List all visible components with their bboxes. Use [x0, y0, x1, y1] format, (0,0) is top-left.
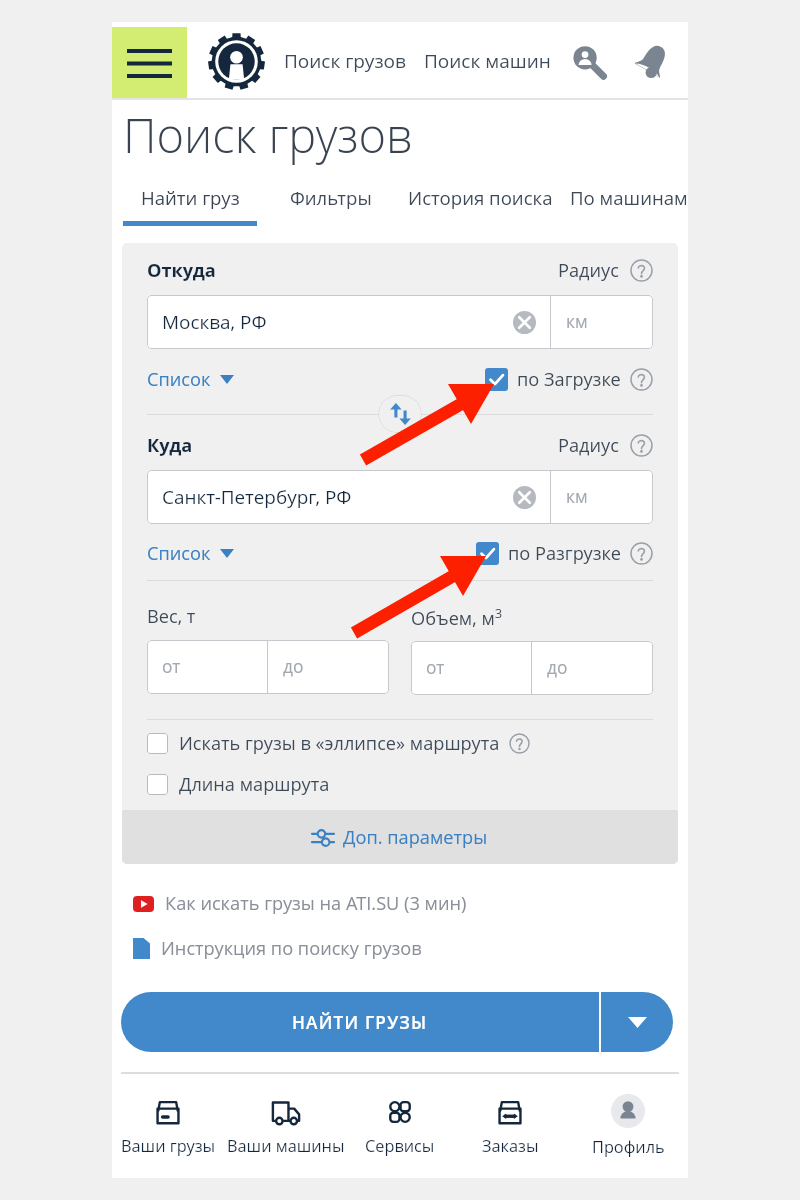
button[interactable]: Санкт-Петербург, РФ: [147, 470, 550, 524]
staticText: до: [283, 655, 304, 679]
button[interactable]: Find user: [566, 38, 612, 84]
button[interactable]: Clear: [513, 311, 536, 334]
staticText: Инструкция по поиску грузов: [161, 936, 422, 961]
button[interactable]: км: [551, 295, 653, 349]
button[interactable]: Заказы: [452, 1089, 568, 1163]
staticText: Список: [147, 367, 211, 392]
staticText: Вес, т: [147, 604, 196, 629]
button[interactable]: Help: [630, 542, 653, 565]
button[interactable]: НАЙТИ ГРУЗЫ: [121, 992, 599, 1052]
staticText: от: [426, 656, 445, 680]
staticText: Поиск грузов: [284, 48, 406, 74]
button[interactable]: от: [411, 641, 531, 695]
button[interactable]: Radius help: [630, 259, 653, 282]
button[interactable]: по Загрузке: [485, 364, 621, 395]
staticText: от: [162, 655, 181, 679]
staticText: Список: [147, 541, 211, 566]
staticText: Искать грузы в «эллипсе» маршрута: [179, 731, 500, 756]
button[interactable]: Профиль: [568, 1088, 688, 1164]
button[interactable]: Как искать грузы на ATI.SU (3 мин): [133, 888, 467, 919]
staticText: км: [566, 485, 588, 509]
button[interactable]: Menu: [112, 27, 187, 100]
staticText: История поиска: [408, 185, 553, 210]
staticText: до: [547, 656, 568, 680]
staticText: по Разгрузке: [508, 541, 621, 566]
staticText: Как искать грузы на ATI.SU (3 мин): [165, 891, 467, 916]
button[interactable]: Notifications: [630, 38, 676, 84]
staticText: Сервисы: [365, 1135, 435, 1157]
button[interactable]: Поиск машин: [424, 38, 551, 84]
staticText: Радиус: [558, 433, 619, 458]
staticText: Профиль: [592, 1136, 665, 1158]
button[interactable]: История поиска: [402, 180, 558, 226]
button[interactable]: по Разгрузке: [476, 538, 621, 569]
staticText: Длина маршрута: [179, 772, 330, 797]
button[interactable]: Help: [630, 368, 653, 391]
button[interactable]: Длина маршрута: [147, 770, 330, 799]
button[interactable]: Искать грузы в «эллипсе» маршрута: [147, 729, 530, 758]
button[interactable]: По машинам: [570, 180, 688, 226]
button[interactable]: Сервисы: [348, 1089, 452, 1163]
button[interactable]: Ваши грузы: [112, 1089, 224, 1163]
staticText: По машинам: [570, 185, 688, 210]
staticText: Заказы: [482, 1135, 539, 1157]
button[interactable]: Clear: [513, 486, 536, 509]
staticText: Фильтры: [290, 185, 372, 210]
staticText: Санкт-Петербург, РФ: [162, 484, 352, 510]
staticText: Поиск машин: [424, 48, 551, 74]
button[interactable]: до: [532, 641, 653, 695]
button[interactable]: Список: [147, 538, 234, 569]
staticText: Ваши грузы: [121, 1135, 216, 1157]
staticText: Радиус: [558, 258, 619, 283]
button[interactable]: Найти груз: [123, 180, 257, 226]
button[interactable]: Список: [147, 364, 234, 395]
button[interactable]: от: [147, 640, 267, 694]
button[interactable]: More search options: [601, 992, 673, 1052]
staticText: НАЙТИ ГРУЗЫ: [292, 1011, 428, 1034]
button[interactable]: до: [268, 640, 389, 694]
button[interactable]: Москва, РФ: [147, 295, 550, 349]
button[interactable]: Radius help: [630, 434, 653, 457]
staticText: Москва, РФ: [162, 309, 267, 335]
button[interactable]: Поиск грузов: [284, 38, 406, 84]
staticText: по Загрузке: [517, 367, 621, 392]
staticText: км: [566, 310, 588, 334]
button[interactable]: Ваши машины: [224, 1089, 348, 1163]
staticText: Доп. параметры: [343, 825, 488, 850]
button[interactable]: Swap directions: [378, 395, 422, 433]
staticText: Объем, м3: [411, 604, 503, 630]
staticText: Откуда: [147, 258, 216, 283]
staticText: Ваши машины: [227, 1135, 345, 1157]
button[interactable]: Доп. параметры: [122, 810, 678, 864]
staticText: Найти груз: [141, 185, 240, 210]
button[interactable]: км: [551, 470, 653, 524]
button[interactable]: Инструкция по поиску грузов: [133, 933, 422, 964]
button[interactable]: ATI logo: [205, 30, 267, 92]
staticText: Поиск грузов: [123, 103, 413, 167]
staticText: Куда: [147, 433, 193, 458]
button[interactable]: Фильтры: [284, 180, 378, 226]
